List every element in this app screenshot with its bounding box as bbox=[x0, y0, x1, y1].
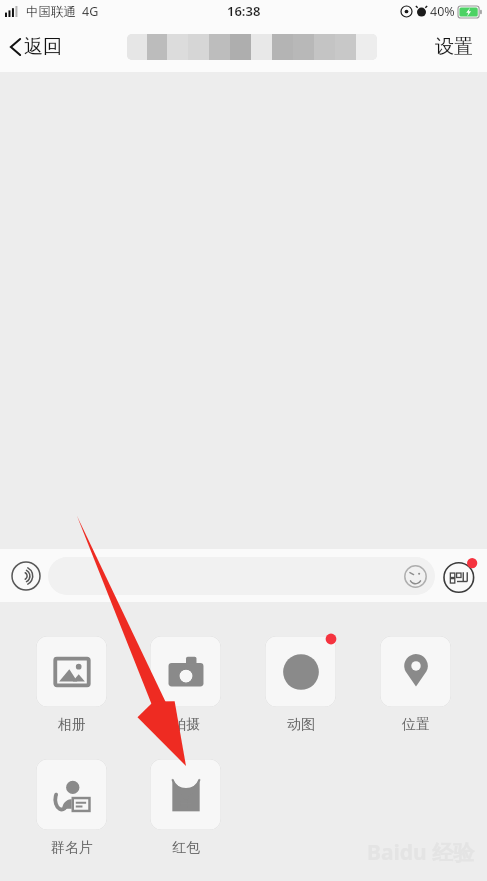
button[interactable]: 位置 bbox=[376, 632, 455, 736]
button[interactable]: 红包 bbox=[146, 755, 225, 859]
button[interactable]: 表情 bbox=[48, 557, 435, 595]
staticText: 40% bbox=[430, 3, 455, 20]
button[interactable]: 动图 bbox=[261, 632, 340, 736]
staticText: 红包 bbox=[172, 839, 200, 857]
staticText: 群名片 bbox=[51, 839, 93, 857]
button[interactable]: 语音输入 bbox=[8, 558, 44, 594]
button[interactable]: 更多功能 bbox=[441, 557, 479, 595]
button[interactable]: 拍摄 bbox=[146, 632, 225, 736]
button[interactable]: 群名片 bbox=[32, 755, 111, 859]
button[interactable]: 返回 bbox=[0, 29, 74, 65]
staticText: 中国联通 bbox=[26, 4, 76, 20]
button[interactable]: 表情 bbox=[401, 562, 429, 590]
button[interactable]: 设置 bbox=[421, 27, 487, 67]
button[interactable]: 相册 bbox=[32, 632, 111, 736]
staticText: 16:38 bbox=[227, 2, 261, 20]
staticText: 4G bbox=[82, 3, 99, 20]
staticText: 拍摄 bbox=[172, 716, 200, 734]
staticText: 相册 bbox=[58, 716, 86, 734]
staticText: 设置 bbox=[435, 35, 473, 59]
staticText: 返回 bbox=[24, 35, 62, 59]
other: 返回 bbox=[10, 37, 21, 57]
staticText: 位置 bbox=[402, 716, 430, 734]
staticText: 动图 bbox=[287, 716, 315, 734]
staticText: Baidu 经验 bbox=[367, 838, 475, 867]
